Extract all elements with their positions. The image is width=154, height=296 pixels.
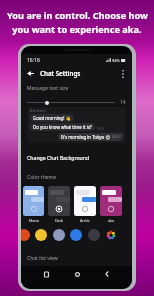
- staticText: 94%: [112, 58, 120, 63]
- staticText: Mono: [29, 218, 39, 223]
- staticText: Change Chat Background: [27, 154, 90, 161]
- staticText: 14: [120, 99, 126, 106]
- button[interactable]: Recents: [40, 268, 52, 280]
- staticText: aka: [108, 218, 114, 223]
- button[interactable]: Mono: [23, 186, 44, 223]
- staticText: 16:16: [112, 135, 120, 139]
- button[interactable]: Dark: [48, 186, 70, 223]
- staticText: 16:16: [27, 57, 40, 64]
- button[interactable]: Change Chat Background: [27, 154, 90, 161]
- staticText: You are in control. Choose how: [7, 9, 148, 22]
- staticText: Color theme: [27, 174, 57, 181]
- button[interactable]: More options: [117, 68, 128, 79]
- button[interactable]: Back: [101, 268, 113, 280]
- staticText: Chat Settings: [40, 69, 81, 77]
- staticText: Dark: [55, 218, 64, 223]
- button[interactable]: Colour swatch: [21, 229, 30, 241]
- button[interactable]: Colour swatch: [88, 229, 100, 241]
- button[interactable]: Colour swatch: [53, 229, 65, 241]
- staticText: It's morning in Tokyo 😊: [61, 134, 110, 140]
- button[interactable]: Back: [24, 67, 37, 80]
- button[interactable]: Arctic: [74, 186, 96, 223]
- button[interactable]: Text size slider: [27, 100, 115, 105]
- staticText: Do you know what time it is?: [33, 124, 92, 130]
- staticText: Arctic: [80, 218, 90, 223]
- button[interactable]: aka: [100, 186, 122, 223]
- button[interactable]: Colour swatch: [70, 229, 82, 241]
- button[interactable]: Colour swatch: [35, 229, 47, 241]
- staticText: 16:15: [97, 127, 105, 131]
- staticText: Chat list view: [27, 255, 58, 262]
- staticText: Bob Harris: [30, 109, 46, 113]
- button[interactable]: Custom colour: [105, 229, 117, 241]
- staticText: Good morning! 👋: [33, 115, 71, 121]
- staticText: you want to experience aka.: [12, 23, 142, 36]
- staticText: Message text size: [27, 85, 69, 92]
- button[interactable]: Home: [71, 268, 83, 280]
